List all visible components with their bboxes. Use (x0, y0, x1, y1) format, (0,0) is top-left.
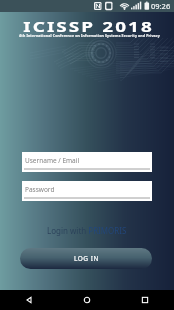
button[interactable]: Username / Email (22, 152, 152, 172)
button[interactable]: Back (0, 290, 58, 310)
button[interactable]: Home (58, 290, 116, 310)
staticText: 4th International Conference on Informat… (19, 33, 160, 38)
button[interactable]: Recents (116, 290, 174, 310)
button[interactable]: LOG IN (20, 248, 152, 269)
button[interactable]: Login with PRIMORIS (0, 223, 174, 237)
button[interactable]: Password (22, 181, 152, 201)
staticText: Login with PRIMORIS (47, 225, 127, 236)
staticText: ICISSP 2018 (23, 18, 155, 36)
staticText: LOG IN (74, 254, 99, 263)
staticText: Password (25, 185, 55, 194)
staticText: 09:26 (151, 1, 171, 11)
staticText: Username / Email (25, 156, 80, 165)
